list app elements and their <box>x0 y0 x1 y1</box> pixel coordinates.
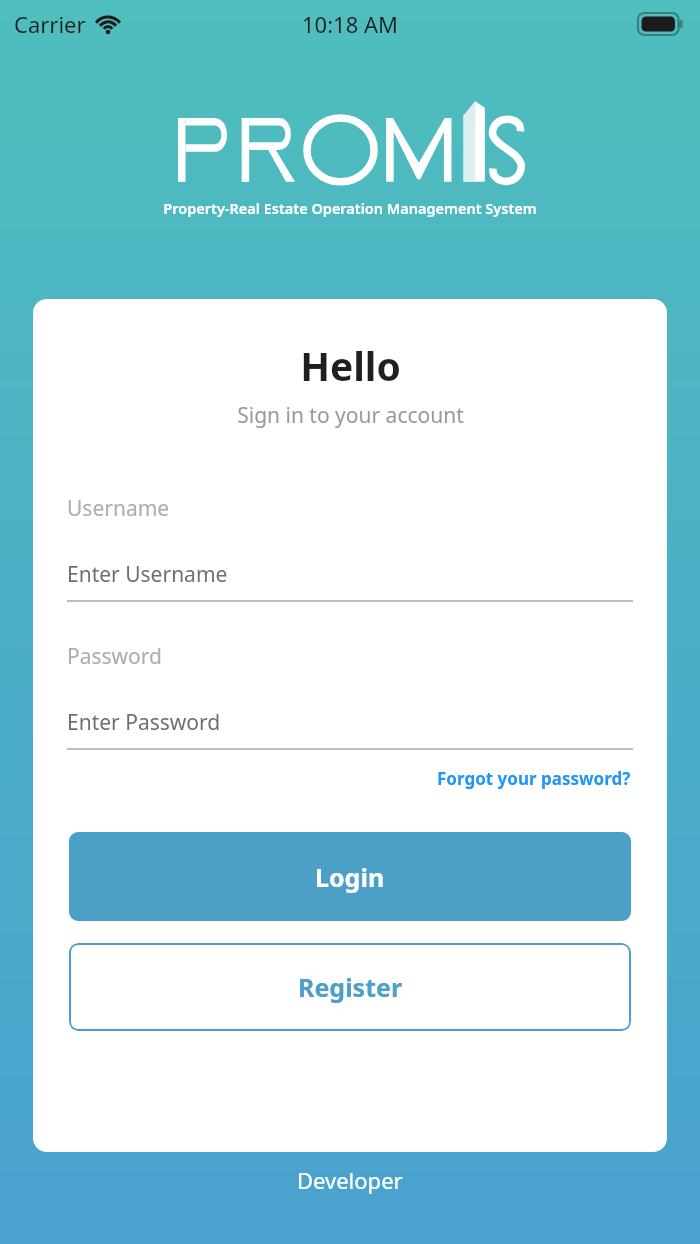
staticText: Enter Password <box>67 708 221 737</box>
other: PROMIS logo <box>178 104 522 194</box>
staticText: Carrier <box>14 9 86 39</box>
button[interactable]: Password <box>67 642 633 750</box>
staticText: Hello <box>300 339 401 392</box>
staticText: Sign in to your account <box>237 401 464 430</box>
staticText: Enter Username <box>67 560 228 589</box>
button[interactable]: Login <box>69 832 631 921</box>
staticText: Property-Real Estate Operation Managemen… <box>163 198 537 218</box>
button[interactable]: Username <box>67 494 633 602</box>
other: Wi-Fi <box>95 14 121 34</box>
staticText: Login <box>315 860 385 894</box>
staticText: Username <box>67 494 170 523</box>
staticText: Developer <box>297 1165 403 1195</box>
button[interactable]: Register <box>69 943 631 1031</box>
staticText: Forgot your password? <box>437 767 631 790</box>
button[interactable]: Developer <box>291 1163 409 1197</box>
staticText: Password <box>67 642 162 671</box>
other: Battery full <box>638 13 684 35</box>
button[interactable]: Forgot your password? <box>435 764 633 793</box>
staticText: 10:18 AM <box>302 9 398 39</box>
staticText: Register <box>298 970 403 1004</box>
